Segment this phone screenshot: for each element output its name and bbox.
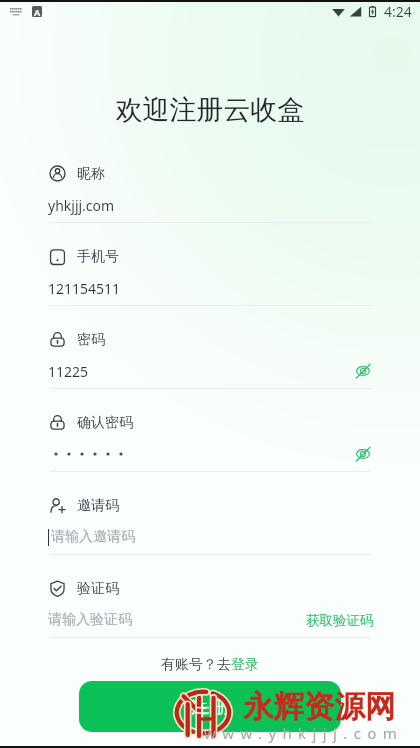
staticText: 验证码	[77, 580, 119, 598]
staticText: www.yhkjjj.com	[204, 723, 404, 743]
button[interactable]	[48, 443, 352, 465]
button[interactable]: 注 册	[79, 681, 341, 732]
button[interactable]: 请输入邀请码	[48, 526, 374, 548]
button[interactable]: 请输入验证码	[48, 609, 306, 631]
staticText: 昵称	[77, 165, 105, 183]
staticText: A	[34, 6, 41, 17]
staticText: 有账号？去	[161, 656, 231, 674]
button[interactable]: 121154511	[48, 277, 374, 299]
button[interactable]: 获取验证码	[306, 609, 374, 631]
staticText: 密码	[77, 331, 105, 349]
button[interactable]: 11225	[48, 360, 352, 382]
staticText: 确认密码	[77, 414, 133, 432]
staticText: 请输入验证码	[48, 611, 132, 629]
staticText: 登录	[231, 656, 259, 674]
button[interactable]: 有账号？去	[161, 656, 259, 674]
button[interactable]: Toggle password visibility	[352, 443, 374, 465]
staticText: 邀请码	[77, 497, 119, 515]
staticText: 获取验证码	[306, 612, 374, 629]
button[interactable]: yhkjjj.com	[48, 194, 374, 216]
staticText: 121154511	[48, 279, 121, 298]
staticText: 永辉资源网	[243, 688, 396, 726]
staticText: 欢迎注册云收盒	[0, 93, 420, 127]
staticText: 注 册	[191, 695, 230, 718]
staticText: yhkjjj.com	[48, 196, 115, 215]
staticText: 11225	[48, 362, 89, 381]
button[interactable]: Toggle password visibility	[352, 360, 374, 382]
staticText: 手机号	[77, 248, 119, 266]
staticText: 4:24	[384, 2, 412, 21]
staticText: 请输入邀请码	[51, 528, 135, 546]
